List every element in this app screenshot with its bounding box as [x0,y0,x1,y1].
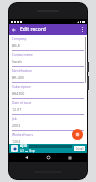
staticText: 2003 [12,123,21,128]
button[interactable]: 2003 [12,123,84,128]
staticText: 4.3 [20,149,24,153]
staticText: Identification [12,69,32,73]
button[interactable]: 1204 [12,139,84,144]
staticText: Job [12,117,17,121]
button[interactable]: Add [72,129,83,140]
staticText: Shop [29,149,36,153]
staticText: Date of issue [12,101,32,105]
staticText: AJIO [20,144,28,148]
button[interactable]: BR-400 [12,75,84,80]
staticText: Edit record [20,26,46,33]
staticText: BR-400 [12,75,24,80]
button[interactable]: 12.07 [12,107,84,112]
staticText: Contact name [12,53,33,57]
staticText: BB-8 [12,43,20,48]
button[interactable]: 884300 [12,91,84,96]
button[interactable]: Install [74,146,85,151]
button[interactable]: Recents [65,153,74,162]
button[interactable]: AJIO [9,144,87,153]
staticText: Company [12,37,27,41]
staticText: Worked hours [12,133,34,137]
staticText: 12.07 [12,107,22,112]
staticText: Install [76,147,84,151]
button[interactable]: More options [78,25,87,34]
button[interactable]: Back [9,25,18,34]
button[interactable]: Back [22,153,31,162]
staticText: 1204 [12,139,21,144]
staticText: 884300 [12,91,25,96]
button[interactable]: Sarah [12,59,84,64]
staticText: Subscription [12,85,31,89]
button[interactable]: Home [44,153,53,162]
staticText: Sarah [12,59,22,64]
button[interactable]: BB-8 [12,43,84,48]
